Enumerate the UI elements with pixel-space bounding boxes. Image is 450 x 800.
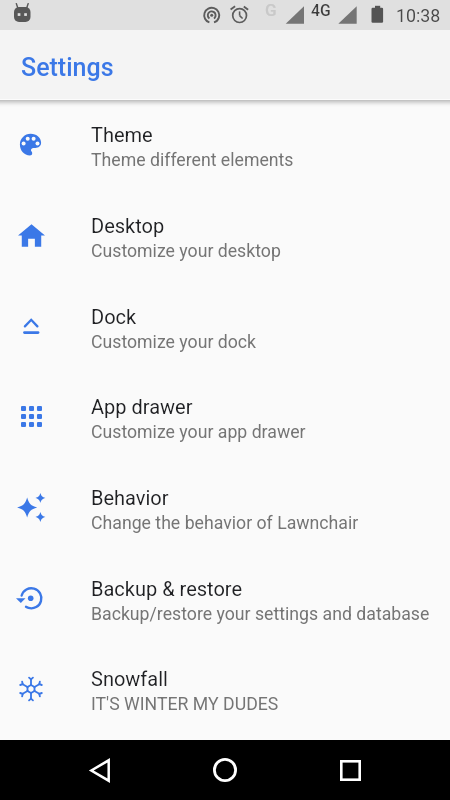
button[interactable]: Desktop: [0, 190, 450, 281]
staticText: Customize your dock: [91, 332, 257, 353]
staticText: Customize your app drawer: [91, 422, 306, 443]
staticText: Snowfall: [91, 667, 168, 690]
button[interactable]: Recents: [326, 740, 374, 800]
button[interactable]: Dock: [0, 281, 450, 372]
button[interactable]: Home: [201, 740, 249, 800]
staticText: App drawer: [91, 395, 193, 418]
staticText: Desktop: [91, 214, 165, 237]
button[interactable]: Theme: [0, 99, 450, 190]
staticText: Theme: [91, 123, 153, 146]
staticText: Theme different elements: [91, 150, 294, 171]
button[interactable]: Behavior: [0, 462, 450, 553]
button[interactable]: Back: [76, 740, 124, 800]
staticText: Backup & restore: [91, 577, 243, 600]
staticText: Backup/restore your settings and databas…: [91, 604, 430, 625]
staticText: IT'S WINTER MY DUDES: [91, 694, 279, 715]
staticText: Customize your desktop: [91, 241, 281, 262]
staticText: 4G: [311, 1, 331, 19]
staticText: G: [265, 0, 277, 20]
button[interactable]: Snowfall: [0, 643, 450, 734]
staticText: Behavior: [91, 486, 169, 509]
button[interactable]: App drawer: [0, 371, 450, 462]
button[interactable]: Backup & restore: [0, 553, 450, 644]
staticText: Change the behavior of Lawnchair: [91, 513, 359, 534]
staticText: Settings: [21, 53, 114, 82]
staticText: 10:38: [396, 5, 441, 26]
staticText: Dock: [91, 305, 137, 328]
